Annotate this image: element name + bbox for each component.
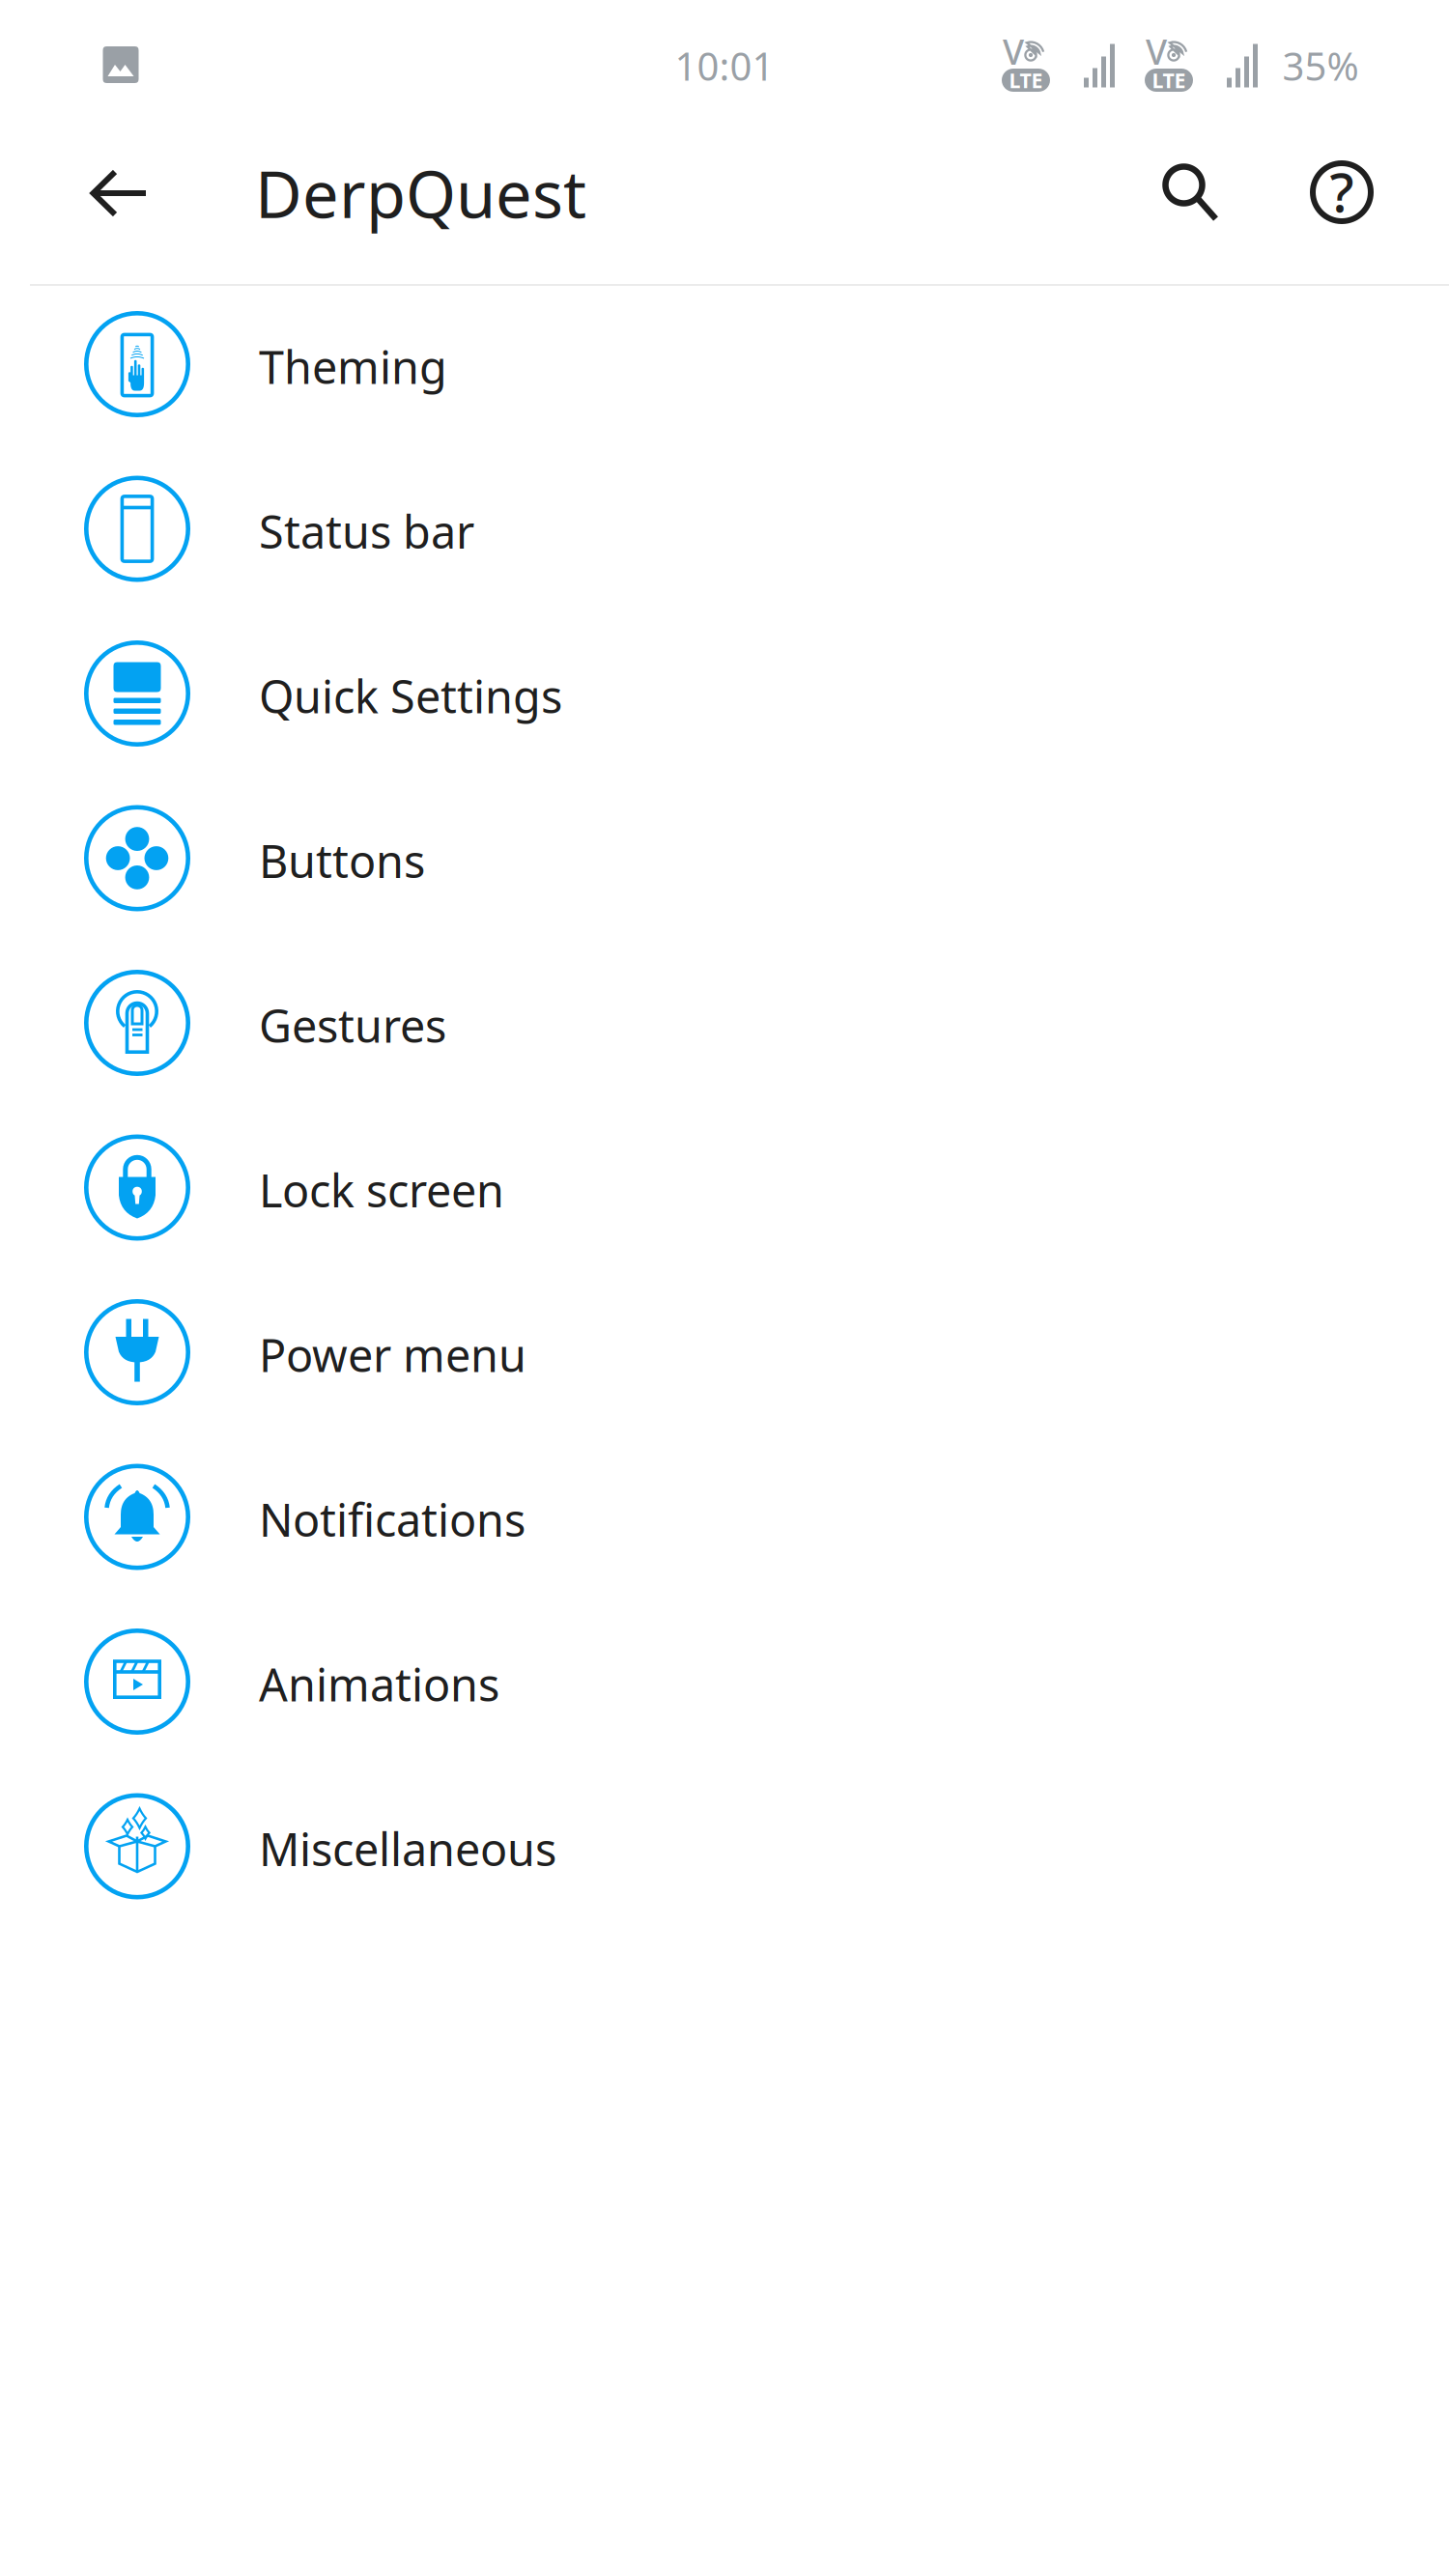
button[interactable]: Notifications	[0, 1435, 1449, 1599]
button[interactable]: Search	[1138, 141, 1244, 247]
staticText: V	[1146, 28, 1167, 74]
button[interactable]: Theming	[0, 282, 1449, 447]
button[interactable]: Lock screen	[0, 1105, 1449, 1270]
staticText: LTE	[1152, 66, 1186, 94]
staticText: Status bar	[259, 501, 474, 561]
button[interactable]: Power menu	[0, 1270, 1449, 1435]
staticText: Gestures	[259, 995, 446, 1055]
staticText: DerpQuest	[255, 150, 586, 236]
button[interactable]: Quick Settings	[0, 611, 1449, 776]
button[interactable]: Status bar	[0, 446, 1449, 611]
staticText: Theming	[259, 337, 447, 396]
staticText: 10:01	[675, 40, 774, 91]
button[interactable]: Back	[66, 140, 172, 246]
staticText: V	[1003, 28, 1024, 74]
staticText: 35%	[1282, 40, 1359, 91]
staticText: Power menu	[259, 1325, 526, 1385]
staticText: Miscellaneous	[259, 1819, 556, 1879]
button[interactable]: Animations	[0, 1599, 1449, 1764]
button[interactable]: Gestures	[0, 941, 1449, 1105]
staticText: Quick Settings	[259, 666, 562, 726]
staticText: LTE	[1009, 66, 1043, 94]
staticText: Lock screen	[259, 1160, 504, 1220]
staticText: ?	[1330, 155, 1354, 227]
staticText: Buttons	[259, 831, 425, 891]
button[interactable]: Buttons	[0, 776, 1449, 940]
staticText: Notifications	[259, 1489, 526, 1549]
button[interactable]: Help	[1289, 139, 1395, 245]
staticText: Animations	[259, 1654, 499, 1714]
button[interactable]: Miscellaneous	[0, 1764, 1449, 1929]
